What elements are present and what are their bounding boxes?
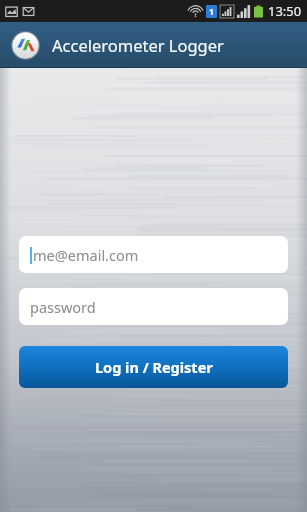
button[interactable]: me@email.com <box>19 236 288 273</box>
staticText: Accelerometer Logger <box>52 34 224 56</box>
button[interactable]: Log in / Register <box>19 346 288 388</box>
staticText: 1 <box>209 6 214 18</box>
staticText: 13:50 <box>268 2 302 20</box>
staticText: Log in / Register <box>95 357 213 377</box>
staticText: password <box>30 297 96 317</box>
other: App icon <box>11 31 40 60</box>
staticText: me@email.com <box>33 245 139 265</box>
button[interactable]: password <box>19 288 288 325</box>
